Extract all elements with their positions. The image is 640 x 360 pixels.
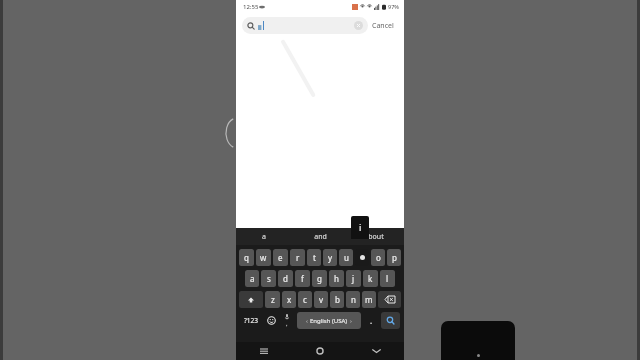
staticText: m bbox=[365, 294, 373, 305]
staticText: y bbox=[328, 252, 333, 263]
staticText: d bbox=[283, 273, 288, 284]
button[interactable]: c bbox=[298, 291, 312, 308]
button[interactable]: b bbox=[330, 291, 344, 308]
button[interactable]: Shift bbox=[239, 291, 263, 308]
button[interactable]: k bbox=[363, 270, 378, 287]
staticText: w bbox=[260, 252, 267, 263]
staticText: i bbox=[359, 221, 362, 233]
button[interactable]: r bbox=[290, 249, 305, 266]
button[interactable]: a bbox=[245, 270, 259, 287]
staticText: ?123 bbox=[244, 316, 258, 325]
button[interactable]: d bbox=[278, 270, 293, 287]
staticText: f bbox=[301, 273, 304, 284]
button[interactable]: t bbox=[307, 249, 321, 266]
button[interactable]: Search bbox=[381, 312, 400, 329]
button[interactable]: f bbox=[295, 270, 310, 287]
button[interactable] bbox=[355, 249, 369, 266]
staticText: z bbox=[271, 294, 275, 305]
other: Search bbox=[247, 22, 255, 30]
button[interactable]: p bbox=[387, 249, 401, 266]
button[interactable]: Recent apps bbox=[236, 342, 292, 360]
button[interactable]: a bbox=[236, 228, 292, 245]
button[interactable]: Home bbox=[292, 342, 348, 360]
staticText: English (USA) bbox=[310, 317, 348, 325]
staticText: 12:55 bbox=[243, 3, 259, 11]
button[interactable]: y bbox=[323, 249, 337, 266]
staticText: k bbox=[368, 273, 373, 284]
button[interactable]: j bbox=[346, 270, 361, 287]
button[interactable]: Cancel bbox=[368, 18, 398, 34]
staticText: q bbox=[244, 252, 249, 263]
button[interactable]: x bbox=[282, 291, 296, 308]
button[interactable]: o bbox=[371, 249, 385, 266]
button[interactable]: s bbox=[261, 270, 276, 287]
staticText: s bbox=[267, 273, 271, 284]
button[interactable]: Backspace bbox=[378, 291, 401, 308]
button[interactable]: bout bbox=[348, 228, 404, 245]
staticText: n bbox=[351, 294, 356, 305]
staticText: b bbox=[335, 294, 340, 305]
staticText: h bbox=[334, 273, 339, 284]
staticText: a bbox=[262, 232, 266, 242]
button[interactable]: . bbox=[364, 311, 378, 330]
button[interactable]: Back bbox=[348, 342, 404, 360]
staticText: ‹ bbox=[306, 317, 308, 325]
button[interactable]: ‹ bbox=[297, 312, 361, 329]
button[interactable]: ?123 bbox=[239, 311, 262, 330]
button[interactable]: Emoji bbox=[264, 311, 278, 330]
staticText: › bbox=[350, 317, 352, 325]
staticText: l bbox=[386, 273, 389, 284]
button[interactable]: l bbox=[380, 270, 395, 287]
staticText: , bbox=[286, 320, 288, 328]
button[interactable]: q bbox=[239, 249, 254, 266]
button[interactable]: n bbox=[346, 291, 360, 308]
staticText: x bbox=[287, 294, 292, 305]
staticText: o bbox=[376, 252, 381, 263]
staticText: u bbox=[344, 252, 349, 263]
button[interactable]: Clear bbox=[354, 21, 363, 30]
staticText: j bbox=[352, 273, 355, 284]
button[interactable]: and bbox=[292, 228, 348, 245]
staticText: and bbox=[314, 232, 327, 242]
staticText: 97% bbox=[388, 3, 399, 10]
button[interactable]: e bbox=[273, 249, 288, 266]
staticText: Cancel bbox=[372, 21, 394, 31]
button[interactable]: w bbox=[256, 249, 271, 266]
staticText: p bbox=[392, 252, 397, 263]
button[interactable]: v bbox=[314, 291, 328, 308]
staticText: r bbox=[296, 252, 300, 263]
staticText: bout bbox=[368, 232, 384, 242]
button[interactable]: g bbox=[312, 270, 327, 287]
button[interactable]: u bbox=[339, 249, 353, 266]
staticText: a bbox=[250, 273, 255, 284]
button[interactable]: h bbox=[329, 270, 344, 287]
button[interactable]: m bbox=[362, 291, 376, 308]
staticText: g bbox=[317, 273, 322, 284]
button[interactable]: Search bbox=[242, 17, 368, 34]
staticText: t bbox=[313, 252, 316, 263]
button[interactable]: z bbox=[265, 291, 280, 308]
staticText: e bbox=[278, 252, 283, 263]
button[interactable]: Voice input bbox=[280, 311, 294, 330]
staticText: . bbox=[370, 315, 373, 326]
staticText: c bbox=[303, 294, 307, 305]
staticText: v bbox=[319, 294, 324, 305]
